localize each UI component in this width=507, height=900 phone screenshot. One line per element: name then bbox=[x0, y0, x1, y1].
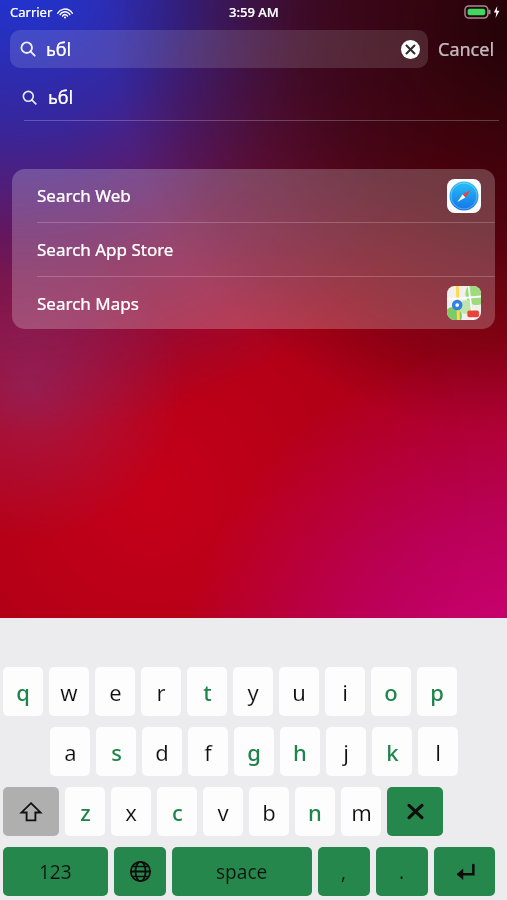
button[interactable]: ьбl bbox=[10, 30, 428, 68]
button[interactable]: h bbox=[280, 727, 320, 776]
button[interactable]: v bbox=[203, 787, 243, 836]
staticText: n bbox=[308, 797, 322, 827]
staticText: 123 bbox=[39, 859, 72, 885]
button[interactable]: Delete bbox=[387, 787, 443, 836]
staticText: k bbox=[386, 737, 399, 767]
button[interactable]: u bbox=[279, 667, 319, 716]
button[interactable]: d bbox=[142, 727, 182, 776]
button[interactable]: Shift bbox=[3, 787, 59, 836]
staticText: u bbox=[292, 677, 306, 707]
button[interactable]: . bbox=[376, 847, 428, 896]
staticText: Cancel bbox=[438, 37, 495, 62]
button[interactable]: Return bbox=[434, 847, 495, 896]
button[interactable]: e bbox=[95, 667, 135, 716]
staticText: z bbox=[80, 797, 91, 827]
button[interactable]: o bbox=[371, 667, 411, 716]
button[interactable]: ьбl bbox=[0, 74, 507, 120]
staticText: o bbox=[384, 677, 398, 707]
staticText: Search Web bbox=[37, 184, 131, 207]
button[interactable]: Search Maps bbox=[12, 277, 495, 329]
button[interactable]: y bbox=[233, 667, 273, 716]
staticText: d bbox=[155, 737, 169, 767]
staticText: r bbox=[156, 677, 166, 707]
staticText: h bbox=[293, 737, 307, 767]
button[interactable]: s bbox=[96, 727, 136, 776]
staticText: ьбl bbox=[46, 37, 72, 62]
button[interactable]: Cancel bbox=[428, 37, 497, 62]
button[interactable]: q bbox=[3, 667, 43, 716]
button[interactable]: x bbox=[111, 787, 151, 836]
button[interactable]: i bbox=[325, 667, 365, 716]
button[interactable]: m bbox=[341, 787, 381, 836]
button[interactable]: Change keyboard language bbox=[114, 847, 166, 896]
button[interactable]: j bbox=[326, 727, 366, 776]
button[interactable]: g bbox=[234, 727, 274, 776]
staticText: c bbox=[172, 797, 183, 827]
staticText: i bbox=[342, 677, 348, 707]
button[interactable]: p bbox=[417, 667, 457, 716]
staticText: x bbox=[125, 797, 137, 827]
staticText: b bbox=[262, 797, 276, 827]
staticText: f bbox=[204, 737, 212, 767]
staticText: , bbox=[341, 859, 347, 885]
staticText: p bbox=[430, 677, 444, 707]
staticText: Carrier bbox=[10, 3, 53, 21]
staticText: j bbox=[343, 737, 349, 767]
button[interactable]: k bbox=[372, 727, 412, 776]
button[interactable]: n bbox=[295, 787, 335, 836]
staticText: s bbox=[111, 737, 122, 767]
staticText: g bbox=[247, 737, 261, 767]
button[interactable]: r bbox=[141, 667, 181, 716]
button[interactable]: z bbox=[65, 787, 105, 836]
button[interactable]: l bbox=[418, 727, 458, 776]
button[interactable]: 123 bbox=[3, 847, 108, 896]
button[interactable]: f bbox=[188, 727, 228, 776]
button[interactable]: space bbox=[172, 847, 312, 896]
staticText: ьбl bbox=[48, 85, 74, 110]
staticText: w bbox=[60, 677, 78, 707]
button[interactable]: w bbox=[49, 667, 89, 716]
button[interactable]: a bbox=[50, 727, 90, 776]
staticText: space bbox=[216, 859, 268, 885]
staticText: a bbox=[64, 737, 77, 767]
button[interactable]: c bbox=[157, 787, 197, 836]
staticText: t bbox=[203, 677, 212, 707]
button[interactable]: Search Web bbox=[12, 169, 495, 222]
staticText: 3:59 AM bbox=[229, 3, 279, 21]
button[interactable]: Search App Store bbox=[12, 223, 495, 276]
staticText: Search App Store bbox=[37, 238, 174, 261]
staticText: v bbox=[217, 797, 229, 827]
staticText: l bbox=[435, 737, 441, 767]
staticText: m bbox=[351, 797, 372, 827]
staticText: y bbox=[247, 677, 259, 707]
staticText: e bbox=[109, 677, 122, 707]
button[interactable]: t bbox=[187, 667, 227, 716]
button[interactable]: Clear text bbox=[401, 40, 420, 59]
staticText: Search Maps bbox=[37, 292, 139, 315]
button[interactable]: , bbox=[318, 847, 370, 896]
staticText: . bbox=[399, 859, 405, 885]
staticText: q bbox=[16, 677, 30, 707]
button[interactable]: b bbox=[249, 787, 289, 836]
